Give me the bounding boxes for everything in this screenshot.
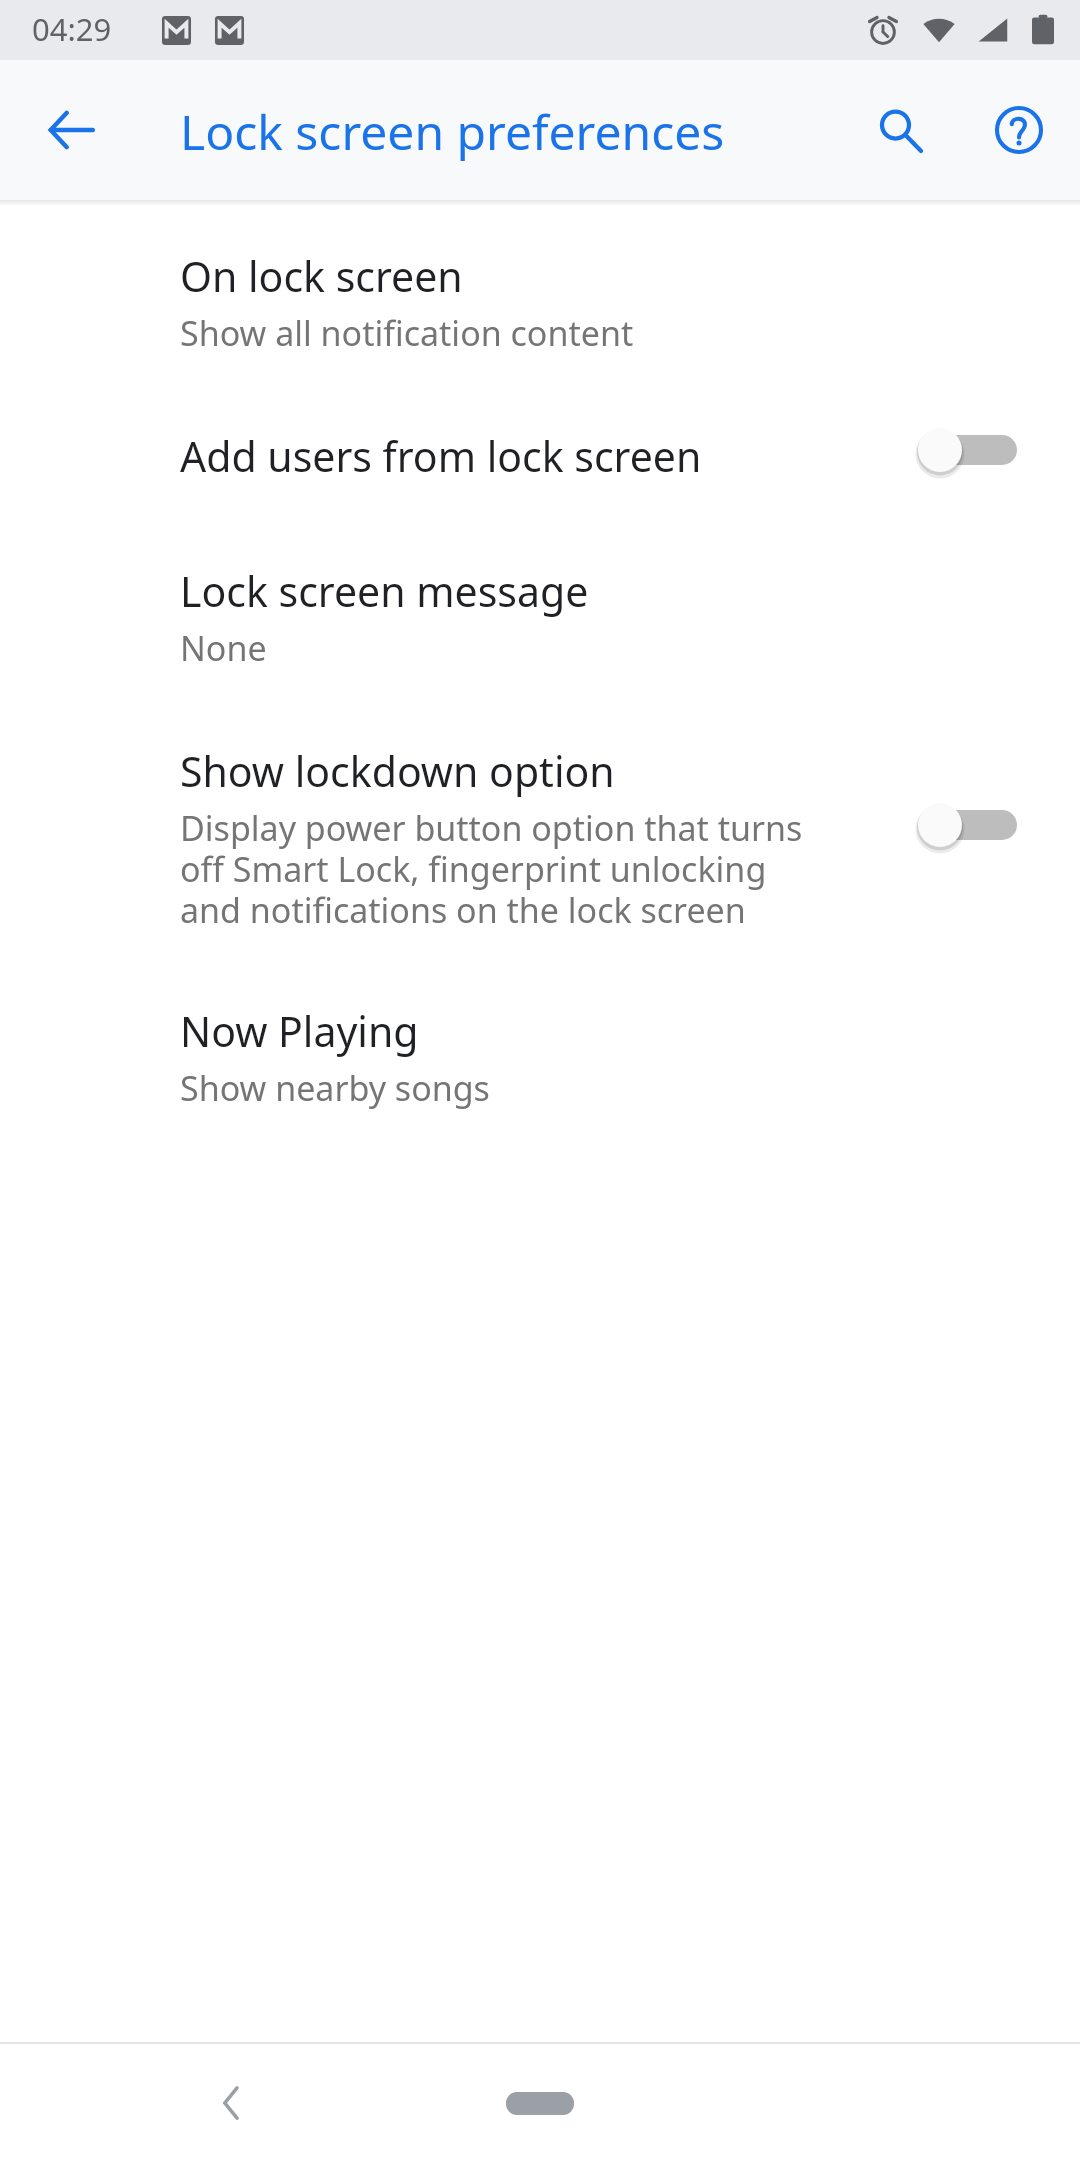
staticText: Show lockdown option [180,743,615,799]
button[interactable]: Home [460,2063,620,2143]
staticText: 04:29 [32,8,112,50]
button[interactable]: Toggle Show lockdown option [912,783,1032,867]
button[interactable]: Help [971,82,1067,178]
staticText: Show all notification content [180,310,634,356]
staticText: Show nearby songs [180,1065,490,1111]
button[interactable]: Show lockdown option [0,725,1080,975]
staticText: None [180,625,267,671]
button[interactable]: Add users from lock screen [0,410,1080,530]
staticText: Lock screen preferences [180,99,725,164]
staticText: Display power button option that turns o… [180,805,805,933]
button[interactable]: Lock screen message [0,545,1080,695]
staticText: Add users from lock screen [180,428,702,484]
staticText: Now Playing [180,1003,419,1059]
button[interactable]: Search [852,82,948,178]
staticText: On lock screen [180,248,463,304]
button[interactable]: Toggle Add users from lock screen [912,408,1032,492]
staticText: Lock screen message [180,563,589,619]
button[interactable]: Back [184,2055,280,2151]
button[interactable]: On lock screen [0,230,1080,380]
button[interactable]: Now Playing [0,985,1080,1135]
button[interactable]: Back [24,82,120,178]
